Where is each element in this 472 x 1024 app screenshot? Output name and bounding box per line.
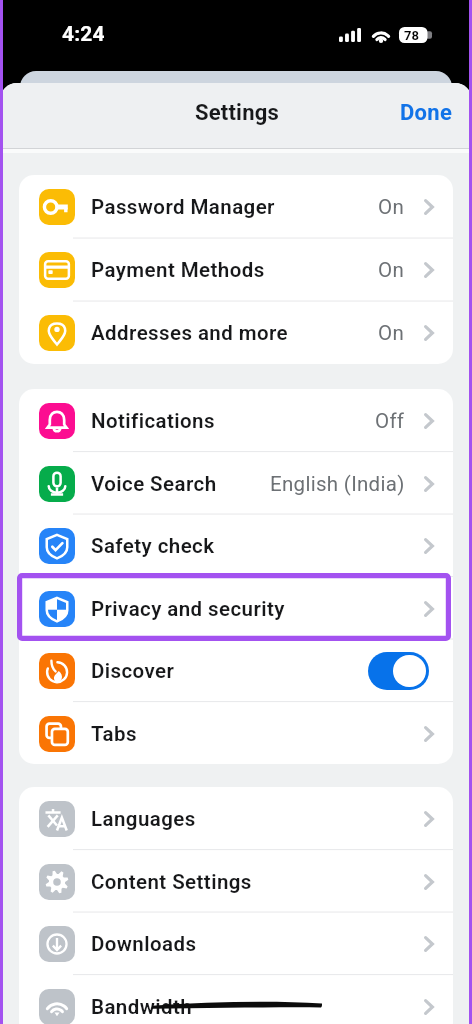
staticText: Settings bbox=[195, 100, 279, 126]
button[interactable]: Payment Methods bbox=[19, 238, 453, 301]
staticText: Payment Methods bbox=[91, 258, 265, 282]
button[interactable]: Password Manager bbox=[19, 175, 453, 238]
staticText: Downloads bbox=[91, 932, 197, 956]
button[interactable]: Privacy and security bbox=[19, 577, 453, 640]
staticText: Tabs bbox=[91, 722, 137, 746]
button[interactable]: Discover bbox=[19, 639, 453, 702]
staticText: Privacy and security bbox=[91, 597, 285, 621]
button[interactable]: Voice Search bbox=[19, 452, 453, 515]
button[interactable]: Tabs bbox=[19, 702, 453, 764]
staticText: Done bbox=[400, 100, 453, 126]
staticText: Content Settings bbox=[91, 870, 252, 894]
staticText: Notifications bbox=[91, 409, 215, 433]
staticText: Bandwidth bbox=[91, 995, 193, 1019]
button[interactable]: Languages bbox=[19, 787, 453, 850]
staticText: 4:24 bbox=[62, 22, 105, 47]
button[interactable]: Addresses and more bbox=[19, 301, 453, 364]
staticText: Languages bbox=[91, 807, 196, 831]
staticText: English (India) bbox=[270, 472, 405, 496]
staticText: Password Manager bbox=[91, 195, 275, 219]
button[interactable]: Downloads bbox=[19, 912, 453, 975]
staticText: Voice Search bbox=[91, 472, 217, 496]
button[interactable]: Safety check bbox=[19, 514, 453, 577]
button[interactable]: Done bbox=[380, 88, 472, 138]
staticText: Off bbox=[375, 409, 405, 433]
staticText: On bbox=[378, 321, 405, 345]
staticText: On bbox=[378, 258, 405, 282]
staticText: On bbox=[378, 195, 405, 219]
staticText: 78 bbox=[404, 28, 419, 43]
staticText: Safety check bbox=[91, 534, 215, 558]
button[interactable]: Toggle Discover bbox=[368, 652, 429, 690]
button[interactable]: Notifications bbox=[19, 389, 453, 452]
button[interactable]: Bandwidth bbox=[19, 975, 453, 1024]
button[interactable]: Content Settings bbox=[19, 850, 453, 913]
staticText: Addresses and more bbox=[91, 321, 289, 345]
staticText: Discover bbox=[91, 659, 175, 683]
